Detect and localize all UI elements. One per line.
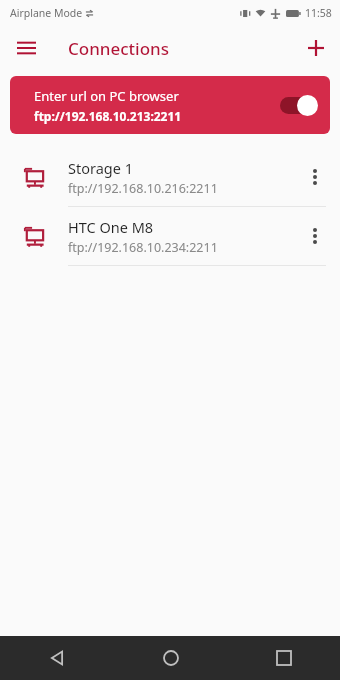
- staticText: HTC One M8: [68, 217, 154, 237]
- staticText: Connections: [68, 37, 170, 60]
- button[interactable]: Enter url on PC browser: [10, 76, 330, 134]
- button[interactable]: Recent apps: [227, 636, 340, 680]
- button[interactable]: Back: [0, 636, 114, 680]
- button[interactable]: Storage 1: [0, 148, 340, 206]
- button[interactable]: Toggle server: [278, 92, 318, 118]
- staticText: Storage 1: [68, 158, 133, 178]
- button[interactable]: Add connection: [298, 30, 334, 66]
- staticText: Enter url on PC browser: [34, 87, 179, 105]
- staticText: ftp://192.168.10.234:2211: [68, 239, 218, 256]
- button[interactable]: HTC One M8: [0, 207, 340, 265]
- button[interactable]: Home: [114, 636, 227, 680]
- button[interactable]: Menu: [8, 30, 44, 66]
- button[interactable]: More options: [295, 216, 335, 256]
- staticText: Airplane Mode: [10, 6, 83, 20]
- staticText: ftp://192.168.10.216:2211: [68, 180, 218, 197]
- button[interactable]: More options: [295, 157, 335, 197]
- staticText: ftp://192.168.10.213:2211: [34, 108, 182, 124]
- staticText: 11:58: [305, 6, 332, 20]
